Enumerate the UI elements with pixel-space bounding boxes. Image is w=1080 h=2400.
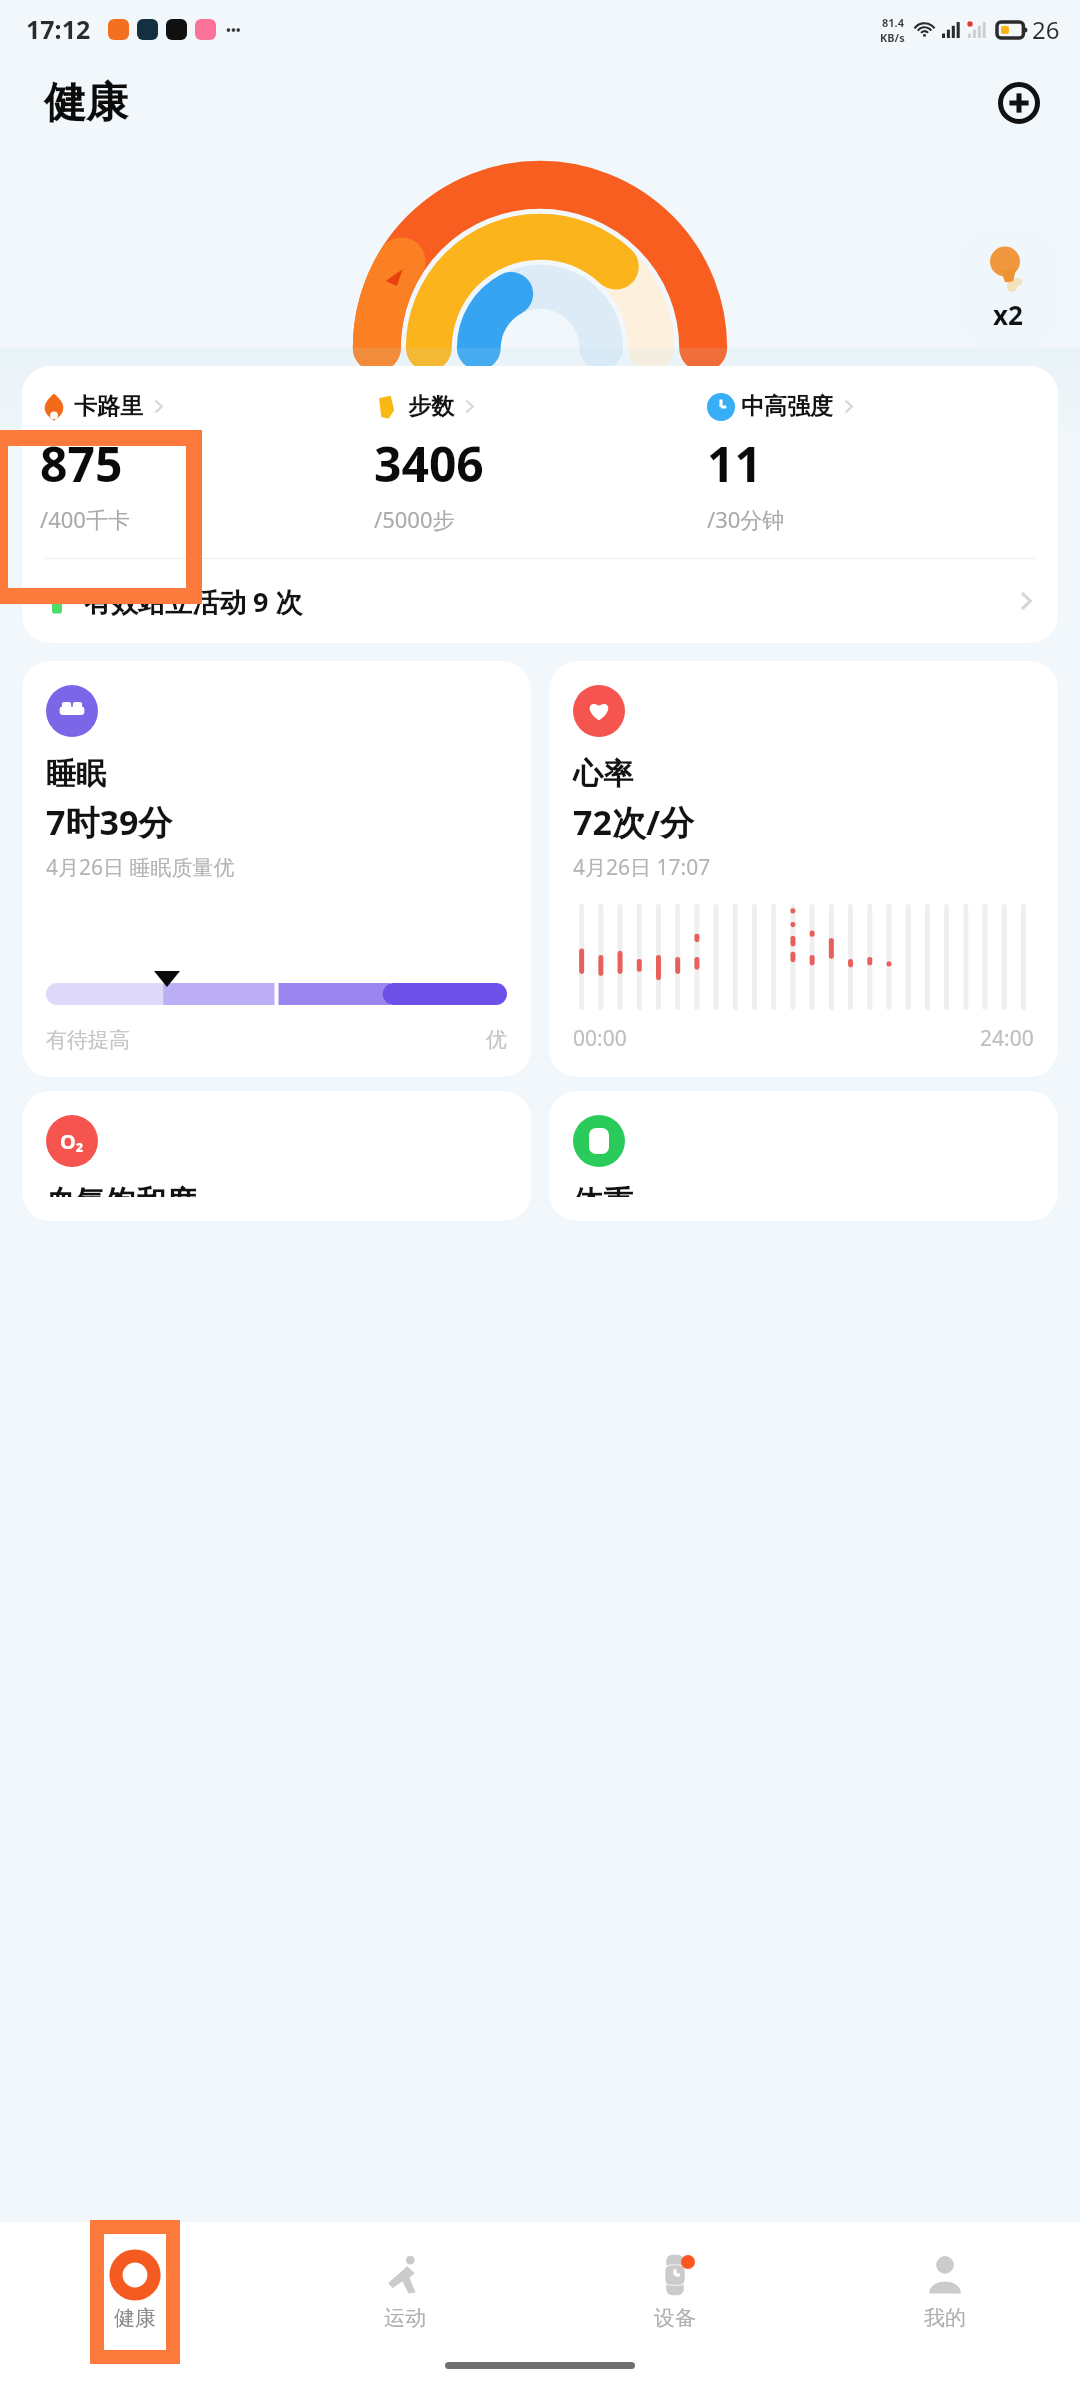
staticText: 运动: [384, 2305, 426, 2331]
staticText: •••: [226, 21, 241, 39]
button[interactable]: 我的: [810, 2222, 1080, 2362]
staticText: 设备: [654, 2305, 696, 2331]
button[interactable]: 步数: [374, 392, 707, 534]
button[interactable]: 心率: [549, 661, 1058, 1077]
staticText: 7时39分: [46, 799, 173, 845]
staticText: /400千卡: [40, 504, 130, 534]
staticText: 健康: [114, 2305, 156, 2331]
staticText: KB/s: [880, 30, 905, 45]
button[interactable]: 运动: [270, 2222, 540, 2362]
staticText: x2: [993, 297, 1023, 332]
staticText: 卡路里: [74, 392, 143, 421]
staticText: 81.4: [882, 15, 904, 30]
staticText: 3406: [374, 431, 484, 496]
button[interactable]: 设备: [540, 2222, 810, 2362]
staticText: 心率: [573, 755, 633, 793]
staticText: 优: [486, 1027, 507, 1053]
staticText: O₂: [60, 1128, 84, 1155]
staticText: 24:00: [980, 1024, 1034, 1053]
staticText: 875: [40, 431, 123, 496]
button[interactable]: 有效站立活动 9 次: [22, 559, 1058, 643]
staticText: 健康: [44, 77, 128, 130]
staticText: 有效站立活动 9 次: [84, 583, 303, 620]
button[interactable]: Add: [996, 80, 1042, 126]
staticText: 步数: [408, 392, 454, 421]
staticText: 中高强度: [741, 392, 833, 421]
button[interactable]: 健康: [0, 2222, 270, 2362]
button[interactable]: 睡眠: [22, 661, 531, 1077]
staticText: 00:00: [573, 1024, 627, 1053]
staticText: 我的: [924, 2305, 966, 2331]
button[interactable]: x2: [960, 228, 1056, 348]
staticText: /30分钟: [707, 504, 785, 534]
staticText: 4月26日 17:07: [573, 853, 711, 882]
staticText: 有待提高: [46, 1027, 130, 1053]
staticText: 17:12: [26, 12, 91, 46]
staticText: 72次/分: [573, 799, 695, 845]
button[interactable]: 中高强度: [707, 392, 1040, 534]
staticText: /5000步: [374, 504, 455, 534]
staticText: 血氧饱和度: [46, 1183, 196, 1197]
staticText: 4月26日 睡眠质量优: [46, 853, 235, 882]
staticText: 睡眠: [46, 755, 106, 793]
button[interactable]: 卡路里: [40, 392, 374, 534]
button[interactable]: 体重: [549, 1091, 1058, 1221]
button[interactable]: O₂: [22, 1091, 531, 1221]
staticText: 体重: [573, 1183, 633, 1197]
staticText: 26: [1032, 13, 1060, 46]
staticText: 11: [707, 431, 762, 496]
